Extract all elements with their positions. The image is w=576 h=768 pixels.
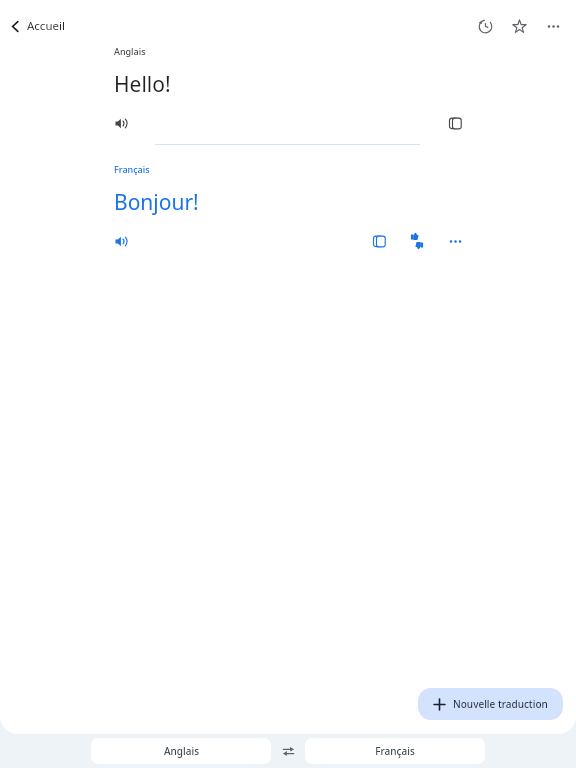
button[interactable]: Français [305, 738, 485, 764]
staticText: Français [114, 163, 150, 175]
button[interactable]: Listen [108, 228, 134, 254]
button[interactable]: Copy [442, 110, 468, 136]
button[interactable]: More options [442, 228, 468, 254]
button[interactable]: Nouvelle traduction [418, 688, 563, 720]
button[interactable]: History [472, 13, 498, 39]
button[interactable]: Swap languages [271, 738, 305, 764]
button[interactable]: Anglais [91, 738, 271, 764]
button[interactable]: Copy [366, 228, 392, 254]
button[interactable]: More options [540, 13, 566, 39]
staticText: Bonjour! [114, 188, 199, 217]
staticText: Accueil [27, 18, 65, 34]
staticText: Nouvelle traduction [453, 697, 548, 711]
button[interactable]: Accueil [4, 13, 70, 39]
button[interactable]: Listen [108, 110, 134, 136]
staticText: Hello! [114, 70, 171, 99]
staticText: Anglais [164, 744, 199, 758]
button[interactable]: Rate translation [404, 228, 430, 254]
staticText: Anglais [114, 45, 146, 57]
staticText: Français [375, 744, 415, 758]
button[interactable]: Favourite [506, 13, 532, 39]
